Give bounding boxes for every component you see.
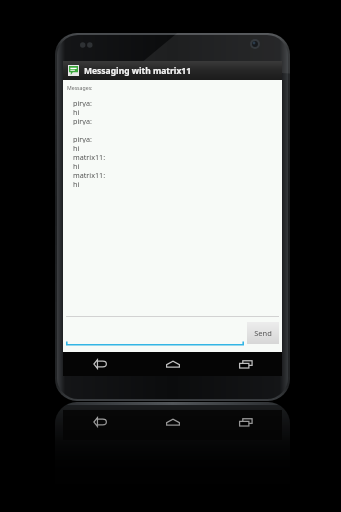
staticText: hi (73, 107, 80, 116)
button[interactable]: Recent apps (209, 352, 282, 376)
staticText: matrix11: (73, 170, 106, 179)
staticText: matrix11: (73, 152, 106, 161)
button[interactable]: Back (63, 352, 136, 376)
button[interactable] (66, 320, 244, 346)
staticText: pirya: (73, 98, 92, 107)
button[interactable]: Send (247, 322, 279, 344)
staticText: hi (73, 161, 80, 170)
staticText: pirya: (73, 134, 92, 143)
staticText: pirya: (73, 116, 92, 125)
button[interactable]: Messaging with matrix11 (63, 61, 282, 80)
staticText: hi (73, 143, 80, 152)
staticText: Messaging with matrix11 (84, 65, 192, 77)
button[interactable]: Home (136, 352, 209, 376)
staticText: hi (73, 179, 80, 188)
staticText: Messages: (67, 84, 93, 91)
staticText: Send (254, 328, 272, 338)
